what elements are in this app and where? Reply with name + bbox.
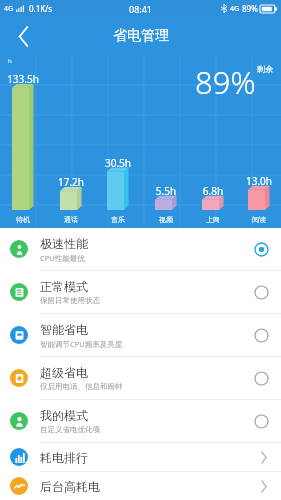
staticText: 后台高耗电: [40, 479, 261, 494]
staticText: 30.5h: [100, 156, 136, 170]
staticText: 6.8h: [195, 184, 231, 198]
staticText: 5.5h: [148, 184, 184, 198]
staticText: 阅读: [241, 215, 277, 224]
staticText: 省电管理: [113, 27, 169, 45]
button[interactable]: 我的模式: [0, 400, 281, 443]
staticText: 智能调节CPU频率及亮度: [40, 339, 123, 349]
staticText: 智能省电: [40, 322, 88, 337]
staticText: 4G: [230, 4, 240, 14]
staticText: 通话: [53, 215, 89, 224]
button[interactable]: 智能省电: [0, 314, 281, 357]
button[interactable]: Back: [0, 17, 46, 55]
staticText: CPU性能最优: [40, 253, 85, 263]
staticText: 极速性能: [40, 236, 88, 251]
button[interactable]: 耗电排行: [0, 443, 281, 472]
staticText: 剩余: [257, 64, 273, 74]
staticText: 保留日常使用状态: [40, 296, 100, 305]
staticText: 89%: [195, 61, 256, 103]
staticText: h: [8, 57, 12, 65]
staticText: 4G: [4, 4, 14, 14]
staticText: 仅启用电话、信息和闹钟: [40, 382, 123, 391]
button[interactable]: 正常模式: [0, 271, 281, 314]
staticText: 视频: [148, 215, 184, 224]
staticText: 耗电排行: [40, 450, 261, 465]
staticText: 待机: [5, 215, 41, 224]
staticText: 13.0h: [241, 174, 277, 188]
staticText: 08:41: [129, 3, 153, 15]
staticText: 正常模式: [40, 279, 88, 294]
staticText: 自定义省电优化项: [40, 425, 100, 434]
staticText: 超级省电: [40, 365, 88, 380]
staticText: 0.1K/s: [29, 3, 53, 14]
staticText: 上网: [195, 215, 231, 224]
button[interactable]: 极速性能: [0, 228, 281, 271]
staticText: 89%: [242, 3, 258, 14]
staticText: 17.2h: [53, 175, 89, 189]
staticText: 音乐: [100, 215, 136, 224]
staticText: 133.5h: [5, 72, 41, 86]
staticText: 我的模式: [40, 408, 88, 423]
button[interactable]: 超级省电: [0, 357, 281, 400]
button[interactable]: 后台高耗电: [0, 472, 281, 500]
